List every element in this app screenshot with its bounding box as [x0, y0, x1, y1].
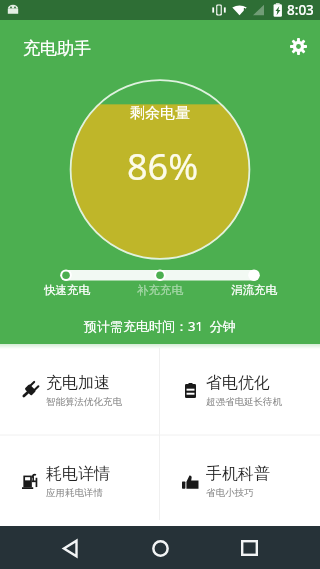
staticText: 手机科普: [206, 464, 270, 484]
button[interactable]: Home: [139, 527, 181, 569]
button[interactable]: 省电优化: [160, 344, 320, 435]
staticText: 8:03: [287, 1, 314, 19]
staticText: 快速充电: [44, 283, 90, 297]
staticText: 充电加速: [46, 373, 110, 393]
staticText: 充电助手: [23, 38, 91, 59]
staticText: 耗电详情: [46, 464, 110, 484]
staticText: 省电优化: [206, 373, 270, 393]
button[interactable]: 充电加速: [0, 344, 160, 435]
staticText: 补充充电: [137, 283, 183, 297]
button[interactable]: 耗电详情: [0, 435, 160, 526]
staticText: 超强省电延长待机: [206, 396, 282, 408]
staticText: 省电小技巧: [206, 487, 254, 499]
staticText: 智能算法优化充电: [46, 396, 122, 408]
staticText: 涓流充电: [231, 283, 277, 297]
staticText: 应用耗电详情: [46, 487, 103, 499]
staticText: 剩余电量: [130, 104, 190, 123]
staticText: 86%: [127, 142, 199, 191]
button[interactable]: Recents: [228, 527, 270, 569]
staticText: 预计需充电时间：31 分钟: [84, 317, 236, 335]
button[interactable]: Settings: [280, 28, 316, 64]
button[interactable]: 手机科普: [160, 435, 320, 526]
button[interactable]: Back: [49, 527, 91, 569]
